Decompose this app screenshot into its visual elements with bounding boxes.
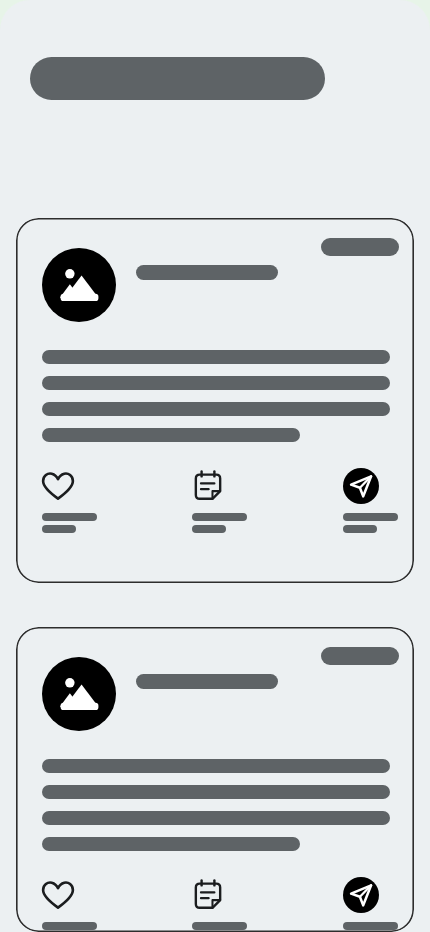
button[interactable]: Comment [192,877,247,932]
button[interactable]: Profile picture [42,657,116,731]
button[interactable]: Comment [192,468,247,533]
button[interactable]: Profile picture [16,218,414,583]
button[interactable]: Search [30,57,325,100]
button[interactable]: Like [42,468,97,533]
button[interactable]: Profile picture [16,627,414,932]
button[interactable]: Share [343,877,398,932]
button[interactable]: Like [42,877,97,932]
button[interactable]: Profile picture [42,248,116,322]
button[interactable]: Share [343,468,398,533]
